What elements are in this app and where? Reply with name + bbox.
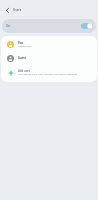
staticText: Administrator bbox=[18, 45, 32, 48]
button[interactable]: Back bbox=[0, 2, 14, 18]
staticText: Guest bbox=[18, 56, 26, 60]
button[interactable]: Guest bbox=[1, 51, 97, 65]
button[interactable]: Toggle users bbox=[81, 22, 93, 30]
staticText: You bbox=[18, 41, 23, 45]
staticText: On bbox=[6, 24, 11, 28]
button[interactable]: On bbox=[2, 19, 96, 33]
staticText: Can't add any more users. Remove a user … bbox=[18, 73, 78, 76]
staticText: Users bbox=[13, 8, 22, 12]
staticText: Add user bbox=[18, 69, 30, 73]
button[interactable]: You bbox=[1, 37, 97, 51]
button[interactable]: Add user bbox=[1, 65, 97, 79]
